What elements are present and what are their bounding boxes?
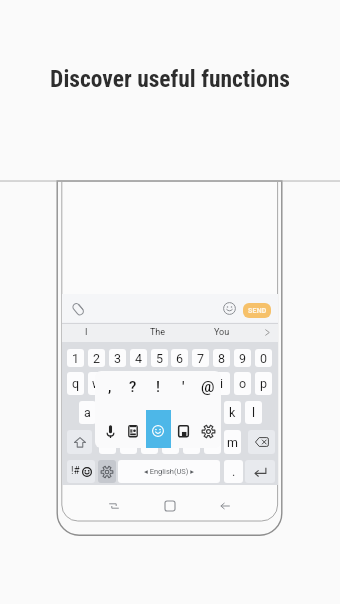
button[interactable]: 4	[130, 349, 147, 367]
staticText: ◂ English(US) ▸	[144, 467, 195, 476]
staticText: m	[227, 435, 238, 450]
button[interactable]: !	[147, 376, 169, 398]
button[interactable]: You	[196, 323, 248, 342]
staticText: !#	[71, 465, 80, 476]
button[interactable]: 0	[255, 349, 272, 367]
button[interactable]: ◂ English(US) ▸	[118, 460, 220, 483]
staticText: o	[239, 376, 247, 391]
staticText: 0	[260, 351, 268, 366]
button[interactable]: More suggestions	[258, 323, 277, 342]
button[interactable]: Shift	[67, 430, 92, 454]
button[interactable]: Stickers	[174, 422, 192, 440]
button[interactable]: '	[172, 376, 194, 398]
button[interactable]: w	[88, 372, 105, 395]
button[interactable]: o	[234, 372, 251, 395]
staticText: @	[201, 378, 215, 396]
staticText: c	[146, 435, 153, 450]
button[interactable]: Recents	[105, 497, 123, 515]
button[interactable]: Home	[161, 497, 179, 515]
staticText: 6	[176, 351, 184, 366]
staticText: Discover useful functions	[0, 65, 340, 93]
button[interactable]: 3	[109, 349, 126, 367]
button[interactable]: ?	[122, 376, 144, 398]
staticText: ?	[129, 378, 137, 396]
button[interactable]: ,	[99, 376, 121, 398]
button[interactable]: SEND	[243, 303, 271, 318]
button[interactable]: i	[213, 372, 230, 395]
staticText: 5	[156, 351, 164, 366]
button[interactable]: The	[132, 323, 184, 342]
staticText: !	[156, 378, 160, 396]
staticText: i	[220, 376, 224, 391]
button[interactable]: 7	[192, 349, 209, 367]
button[interactable]: Backspace	[248, 430, 275, 454]
button[interactable]: Emoji	[223, 302, 236, 315]
button[interactable]: Keyboard settings	[98, 460, 116, 483]
staticText: l	[252, 405, 256, 420]
button[interactable]: x	[120, 430, 137, 454]
staticText: g	[167, 405, 175, 420]
button[interactable]: 5	[151, 349, 168, 367]
staticText: 3	[114, 351, 122, 366]
button[interactable]: Attach	[69, 300, 87, 318]
button[interactable]: u	[192, 372, 209, 395]
button[interactable]: Emoji	[149, 422, 167, 440]
button[interactable]: 6	[171, 349, 188, 367]
button[interactable]: Clipboard	[124, 422, 142, 440]
staticText: You	[214, 327, 230, 338]
button[interactable]: Settings	[199, 422, 217, 440]
button[interactable]: Back	[216, 497, 234, 515]
button[interactable]: 8	[213, 349, 230, 367]
button[interactable]: Symbols	[67, 460, 95, 483]
staticText: w	[92, 376, 102, 391]
staticText: n	[209, 435, 216, 450]
staticText: 2	[93, 351, 101, 366]
button[interactable]: l	[245, 401, 262, 424]
button[interactable]: @	[197, 376, 219, 398]
button[interactable]: 1	[67, 349, 84, 367]
button[interactable]: g	[162, 401, 179, 424]
staticText: 7	[197, 351, 205, 366]
button[interactable]: k	[224, 401, 241, 424]
button[interactable]: f	[141, 401, 158, 424]
button[interactable]: a	[79, 401, 96, 424]
staticText: 4	[135, 351, 143, 366]
staticText: v	[167, 435, 174, 450]
button[interactable]: c	[141, 430, 158, 454]
button[interactable]: z	[99, 430, 116, 454]
button[interactable]: p	[255, 372, 272, 395]
staticText: 1	[72, 351, 80, 366]
button[interactable]: y	[171, 372, 188, 395]
button[interactable]: n	[204, 430, 221, 454]
button[interactable]: Voice input	[101, 422, 119, 440]
staticText: a	[84, 405, 91, 420]
button[interactable]: 2	[88, 349, 105, 367]
staticText: t	[157, 376, 162, 391]
button[interactable]: .	[224, 460, 243, 483]
staticText: q	[72, 376, 80, 391]
staticText: 9	[239, 351, 247, 366]
staticText: f	[147, 405, 152, 420]
staticText: ,	[108, 378, 112, 396]
button[interactable]: r	[130, 372, 147, 395]
button[interactable]: q	[67, 372, 84, 395]
button[interactable]: t	[151, 372, 168, 395]
button[interactable]: Enter	[245, 460, 275, 483]
staticText: The	[150, 327, 166, 338]
staticText: b	[188, 435, 196, 450]
button[interactable]: e	[109, 372, 126, 395]
button[interactable]: b	[183, 430, 200, 454]
button[interactable]: 9	[234, 349, 251, 367]
button[interactable]: m	[224, 430, 241, 454]
staticText: k	[229, 405, 236, 420]
button[interactable]: I	[60, 323, 112, 342]
button[interactable]: v	[162, 430, 179, 454]
